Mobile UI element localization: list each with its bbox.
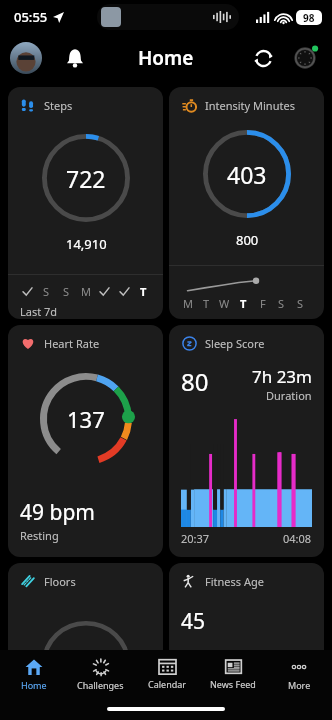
staticText: M — [183, 296, 193, 311]
button[interactable]: Calendar — [134, 650, 200, 698]
staticText: 722 — [66, 163, 106, 194]
staticText: S — [297, 296, 304, 311]
staticText: 04:08 — [283, 531, 312, 546]
staticText: Intensity Minutes — [205, 98, 295, 113]
staticText: 80 — [181, 365, 209, 398]
staticText: Heart Rate — [44, 336, 100, 351]
staticText: S — [43, 284, 50, 299]
button[interactable]: Sync — [246, 41, 280, 75]
staticText: Sleep Score — [205, 336, 265, 351]
staticText: 45 — [181, 607, 206, 636]
staticText: Resting — [20, 528, 59, 543]
button[interactable]: Challenges — [67, 650, 134, 698]
staticText: 49 bpm — [20, 498, 95, 527]
button[interactable]: Floors — [8, 563, 163, 673]
staticText: T — [140, 284, 147, 299]
staticText: 05:55 — [14, 8, 48, 26]
button[interactable]: Steps — [8, 87, 163, 319]
staticText: T — [240, 296, 247, 311]
button[interactable]: Device — [288, 41, 322, 75]
staticText: 98 — [303, 11, 315, 25]
staticText: Last 7d — [20, 304, 58, 319]
button[interactable]: Intensity Minutes — [169, 87, 324, 319]
staticText: W — [219, 296, 230, 311]
staticText: Floors — [44, 574, 76, 589]
staticText: S — [63, 284, 70, 299]
button[interactable]: Fitness Age — [169, 563, 324, 673]
staticText: News Feed — [210, 678, 256, 690]
button[interactable]: Notifications — [58, 41, 92, 75]
button[interactable]: Heart Rate — [8, 325, 163, 557]
staticText: Fitness Age — [205, 574, 264, 589]
staticText: 20:37 — [181, 531, 210, 546]
staticText: M — [81, 284, 91, 299]
button[interactable]: News Feed — [200, 650, 266, 698]
staticText: Steps — [44, 98, 73, 113]
staticText: 403 — [227, 159, 267, 190]
staticText: F — [260, 296, 266, 311]
button[interactable]: Profile — [10, 42, 42, 74]
staticText: Duration — [266, 388, 312, 403]
staticText: S — [278, 296, 285, 311]
staticText: T — [203, 296, 210, 311]
button[interactable]: Sleep Score — [169, 325, 324, 557]
staticText: More — [288, 679, 311, 691]
staticText: Calendar — [148, 678, 186, 690]
staticText: 800 — [236, 231, 259, 249]
staticText: Home — [138, 45, 194, 71]
button[interactable]: More — [266, 650, 332, 698]
staticText: Home — [21, 679, 47, 691]
staticText: 137 — [67, 404, 105, 434]
staticText: 14,910 — [66, 235, 107, 253]
button[interactable]: Home — [0, 650, 67, 698]
staticText: Challenges — [77, 679, 124, 691]
staticText: 7h 23m — [252, 365, 312, 388]
